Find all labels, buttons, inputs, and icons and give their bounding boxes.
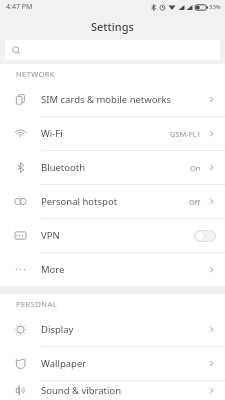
staticText: Display [41, 323, 207, 336]
other: Search [12, 46, 21, 55]
staticText: Settings [91, 19, 134, 34]
staticText: Sound & vibration [41, 384, 207, 397]
staticText: Bluetooth [41, 161, 190, 174]
staticText: GSM-FL1 [170, 129, 201, 139]
button[interactable]: VPN toggle [194, 230, 216, 242]
button[interactable]: Wi-Fi [0, 117, 225, 150]
button[interactable]: Wallpaper [0, 347, 225, 380]
staticText: Wallpaper [41, 357, 207, 370]
staticText: Personal hotspot [41, 195, 189, 208]
button[interactable]: VPN [0, 219, 225, 252]
button[interactable]: Sound & vibration [0, 381, 225, 400]
staticText: 4:47 PM [6, 2, 33, 12]
staticText: SIM cards & mobile networks [41, 93, 207, 106]
staticText: 33% [209, 3, 221, 11]
staticText: PERSONAL [16, 299, 57, 309]
button[interactable]: Display [0, 313, 225, 346]
button[interactable]: Search [5, 40, 220, 60]
button[interactable]: More [0, 253, 225, 286]
staticText: Off [189, 197, 201, 207]
staticText: On [190, 163, 201, 173]
button[interactable]: Personal hotspot [0, 185, 225, 218]
staticText: Wi-Fi [41, 127, 170, 140]
button[interactable]: SIM cards & mobile networks [0, 83, 225, 116]
staticText: VPN [41, 229, 194, 242]
staticText: NETWORK [16, 69, 55, 79]
staticText: More [41, 263, 207, 276]
button[interactable]: Bluetooth [0, 151, 225, 184]
